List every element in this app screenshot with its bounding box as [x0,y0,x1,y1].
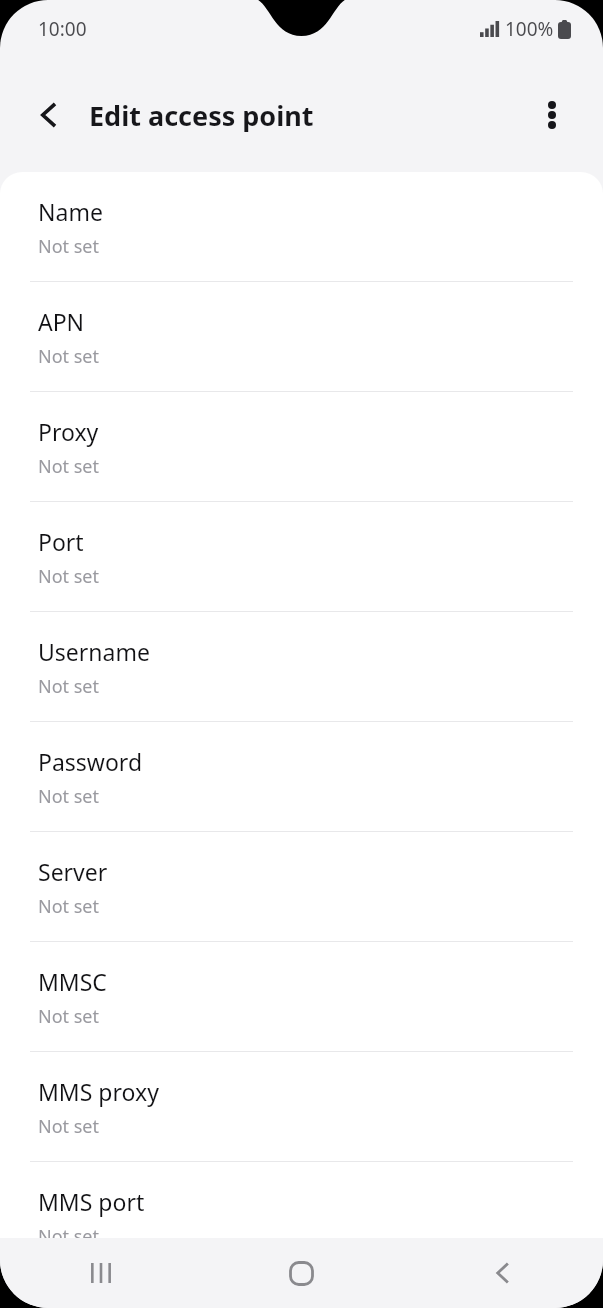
staticText: APN [38,306,85,337]
staticText: Not set [38,454,100,479]
staticText: Username [38,636,150,667]
button[interactable]: MMSC [0,941,603,1051]
staticText: Name [38,196,103,227]
staticText: Not set [38,1004,100,1029]
staticText: Edit access point [89,97,314,134]
button[interactable]: Home [201,1238,402,1308]
staticText: Not set [38,894,100,919]
staticText: Not set [38,1114,100,1139]
staticText: Not set [38,564,100,589]
staticText: Proxy [38,416,99,447]
staticText: Port [38,526,84,557]
staticText: MMSC [38,966,107,997]
button[interactable]: Proxy [0,391,603,501]
staticText: Not set [38,344,100,369]
staticText: MMS port [38,1186,145,1217]
staticText: 100% [505,16,554,42]
button[interactable]: Password [0,721,603,831]
button[interactable]: Name [0,172,603,281]
staticText: 10:00 [38,16,87,42]
button[interactable]: MMS proxy [0,1051,603,1161]
button[interactable]: Recent apps [0,1238,201,1308]
button[interactable]: Back [402,1238,603,1308]
button[interactable]: More options [525,88,579,142]
staticText: Not set [38,234,100,259]
button[interactable]: Port [0,501,603,611]
staticText: Server [38,856,108,887]
staticText: Not set [38,1224,100,1238]
staticText: Not set [38,674,100,699]
button[interactable]: Back [22,88,76,142]
staticText: Not set [38,784,100,809]
button[interactable]: Server [0,831,603,941]
button[interactable]: Username [0,611,603,721]
staticText: Password [38,746,143,777]
button[interactable]: APN [0,281,603,391]
button[interactable]: MMS port [0,1161,603,1238]
staticText: MMS proxy [38,1076,159,1107]
